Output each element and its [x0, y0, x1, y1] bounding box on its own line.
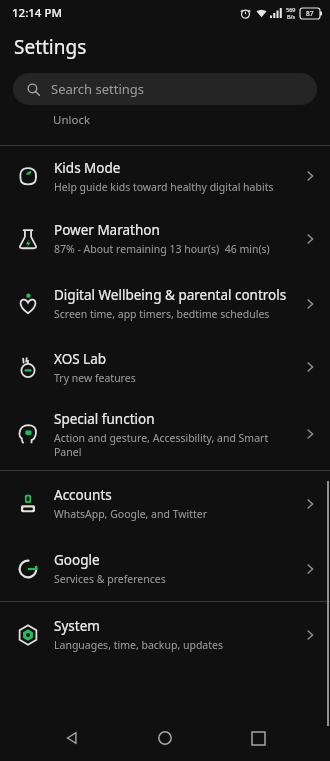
staticText: Action and gesture, Accessibility, and S…	[54, 431, 269, 459]
staticText: WhatsApp, Google, and Twitter	[54, 507, 208, 521]
button[interactable]: Kids Mode	[0, 146, 330, 206]
staticText: Screen time, app timers, bedtime schedul…	[54, 307, 270, 321]
button[interactable]: Accounts	[0, 471, 330, 536]
button[interactable]: Power Marathon	[0, 206, 330, 271]
staticText: System	[54, 617, 100, 635]
staticText: 87% - About remaining 13 hour(s) 46 min(…	[54, 242, 270, 256]
staticText: B/s	[287, 13, 296, 20]
staticText: Services & preferences	[54, 572, 166, 586]
staticText: XOS Lab	[54, 350, 107, 368]
button[interactable]: XOS Lab	[0, 336, 330, 398]
button[interactable]: Google	[0, 536, 330, 601]
button[interactable]: System	[0, 602, 330, 667]
staticText: Google	[54, 551, 100, 569]
staticText: Digital Wellbeing & parental controls	[54, 286, 287, 304]
button[interactable]: Special function	[0, 398, 330, 470]
staticText: Power Marathon	[54, 221, 160, 239]
staticText: Help guide kids toward healthy digital h…	[54, 180, 274, 194]
staticText: Kids Mode	[54, 159, 121, 177]
staticText: Special function	[54, 410, 155, 428]
staticText: Settings	[14, 34, 87, 60]
staticText: Languages, time, backup, updates	[54, 638, 223, 652]
staticText: 569	[286, 6, 296, 13]
staticText: Search settings	[51, 80, 145, 98]
button[interactable]: Back	[51, 717, 93, 759]
button[interactable]: Recents	[237, 717, 279, 759]
staticText: Try new features	[54, 371, 136, 385]
button[interactable]: Digital Wellbeing & parental controls	[0, 271, 330, 336]
staticText: Accounts	[54, 486, 112, 504]
button[interactable]: Search settings	[13, 73, 317, 105]
staticText: 87	[306, 9, 314, 18]
staticText: 12:14 PM	[12, 5, 63, 21]
staticText: Unlock	[53, 112, 91, 128]
button[interactable]: Home	[144, 717, 186, 759]
